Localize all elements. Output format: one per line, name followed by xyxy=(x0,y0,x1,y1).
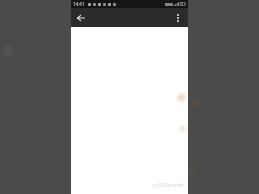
staticText: □ SD Recorder xyxy=(152,182,184,188)
button[interactable]: More options xyxy=(171,11,185,25)
button[interactable]: Navigate up xyxy=(74,11,88,25)
staticText: 14:41 xyxy=(73,1,85,7)
